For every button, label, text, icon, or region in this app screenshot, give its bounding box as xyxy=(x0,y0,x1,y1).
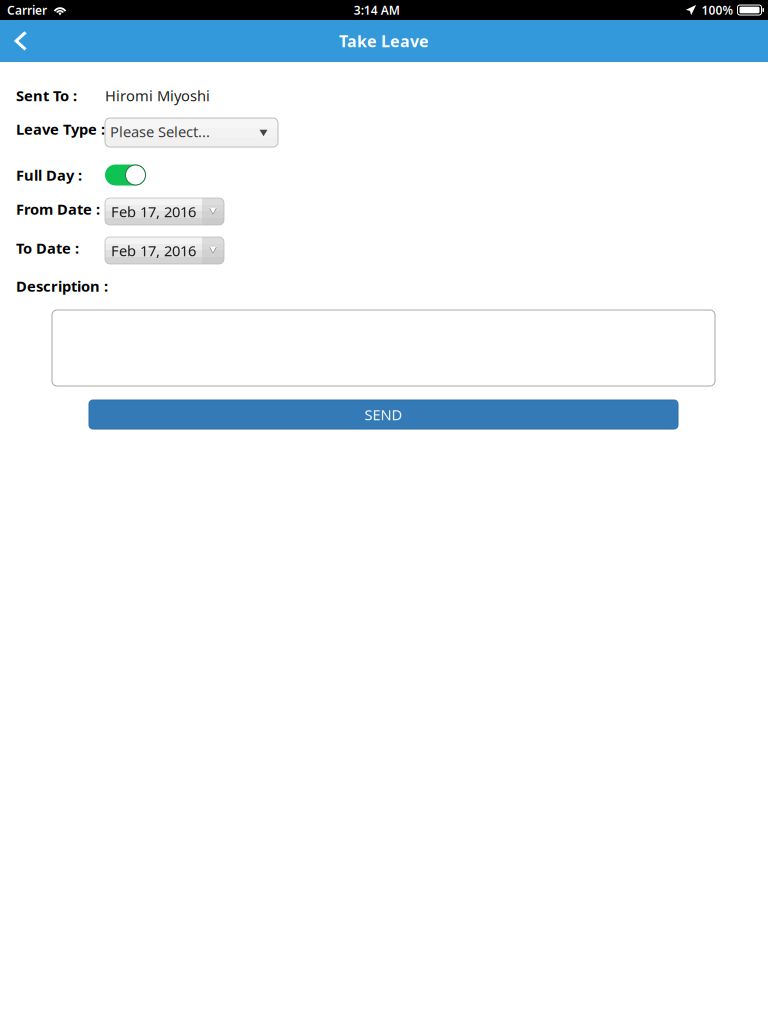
staticText: Leave Type : xyxy=(16,119,105,139)
staticText: Feb 17, 2016 xyxy=(111,202,196,221)
button[interactable]: Feb 17, 2016 xyxy=(105,237,224,264)
staticText: 100% xyxy=(701,2,733,18)
staticText: Full Day : xyxy=(16,165,82,185)
staticText: Description : xyxy=(16,276,108,296)
staticText: From Date : xyxy=(16,199,100,219)
button[interactable]: Full Day xyxy=(105,164,146,185)
staticText: Take Leave xyxy=(339,30,429,52)
staticText: SEND xyxy=(364,405,402,424)
staticText: Sent To : xyxy=(16,86,77,105)
staticText: To Date : xyxy=(16,238,79,258)
staticText: 3:14 AM xyxy=(354,2,400,18)
staticText: Carrier xyxy=(7,2,47,18)
staticText: Please Select... xyxy=(110,122,210,141)
staticText: Feb 17, 2016 xyxy=(111,241,196,260)
staticText: Hiromi Miyoshi xyxy=(105,86,210,105)
button[interactable]: Please Select... xyxy=(105,118,278,147)
button[interactable]: SEND xyxy=(89,400,678,429)
button[interactable]: Feb 17, 2016 xyxy=(105,198,224,225)
button[interactable]: Back xyxy=(0,20,40,62)
